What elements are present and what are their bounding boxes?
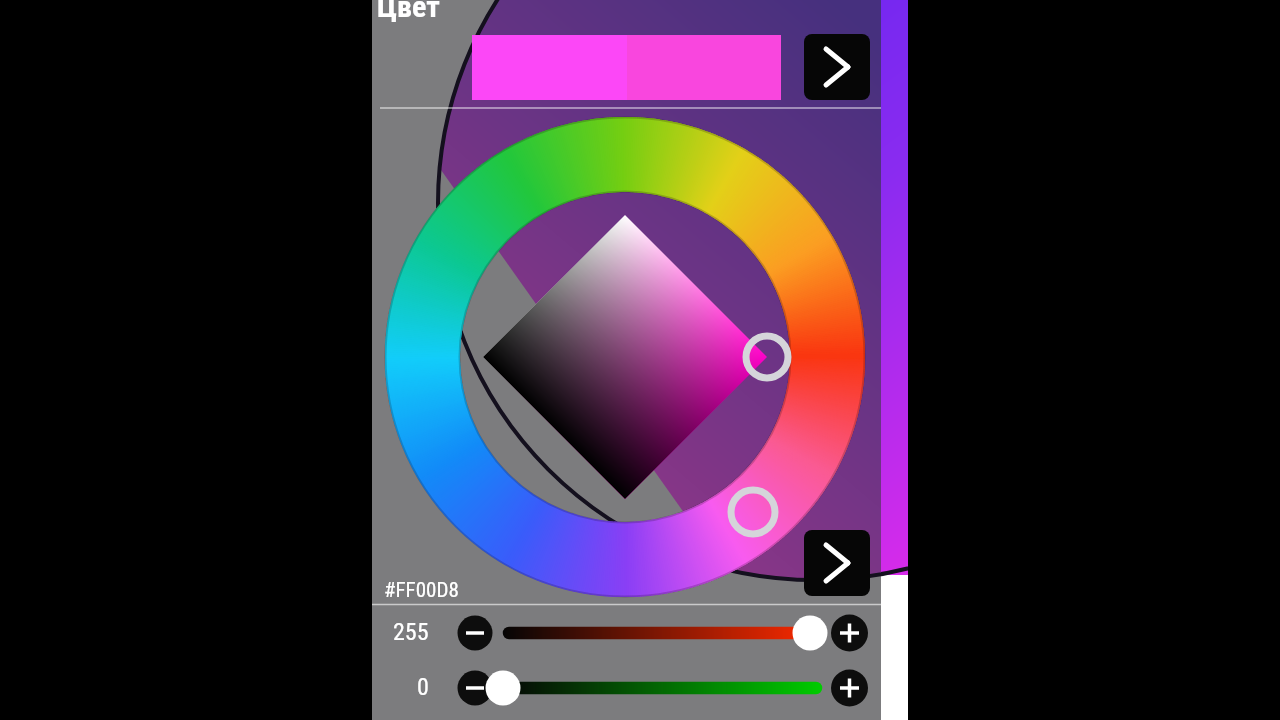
button[interactable]: Red value bbox=[495, 613, 830, 653]
button[interactable]: Next bbox=[804, 34, 870, 100]
button[interactable]: Increase Green bbox=[830, 669, 868, 707]
button[interactable]: Decrease Green bbox=[456, 669, 494, 707]
button[interactable]: Green value bbox=[495, 668, 830, 708]
button[interactable]: Increase Red bbox=[830, 614, 868, 652]
button[interactable]: More colours bbox=[804, 530, 870, 596]
button[interactable]: Colour wheel bbox=[385, 117, 865, 597]
button[interactable]: Decrease Red bbox=[456, 614, 494, 652]
